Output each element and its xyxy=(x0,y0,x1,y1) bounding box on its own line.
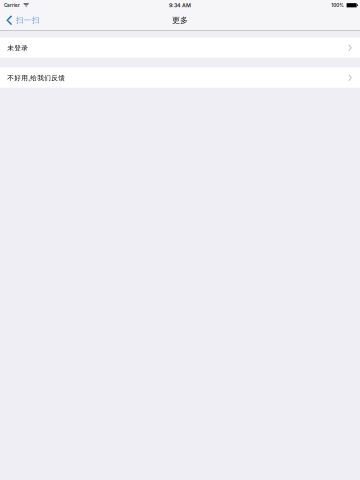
button[interactable]: 未登录 xyxy=(0,37,360,58)
staticText: 未登录 xyxy=(7,44,28,52)
staticText: 扫一扫 xyxy=(16,15,40,25)
staticText: 100% xyxy=(331,2,344,8)
button[interactable]: 不好用,给我们反馈 xyxy=(0,67,360,88)
staticText: Carrier xyxy=(4,2,20,8)
staticText: 9:34 AM xyxy=(169,2,191,8)
staticText: 不好用,给我们反馈 xyxy=(7,74,65,82)
button[interactable]: 扫一扫 xyxy=(0,10,46,30)
staticText: 更多 xyxy=(172,15,188,25)
